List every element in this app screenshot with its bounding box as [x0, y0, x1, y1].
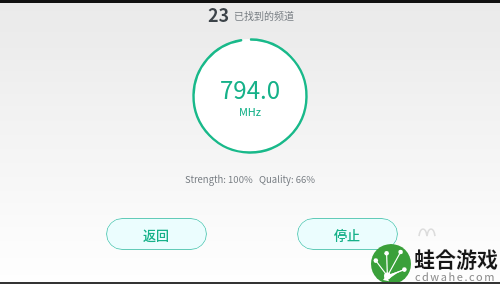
- staticText: Strength: 100% Quality: 66%: [185, 172, 316, 186]
- staticText: 794.0: [192, 71, 308, 106]
- staticText: 返回: [143, 225, 170, 244]
- staticText: 23: [208, 1, 230, 27]
- staticText: 停止: [334, 225, 361, 244]
- staticText: cdwahe.com: [415, 268, 496, 284]
- button[interactable]: 停止: [297, 218, 398, 250]
- button[interactable]: 返回: [106, 218, 207, 250]
- staticText: MHz: [192, 103, 308, 119]
- staticText: 已找到的频道: [234, 8, 294, 22]
- staticText: 蛙合游戏: [414, 243, 498, 273]
